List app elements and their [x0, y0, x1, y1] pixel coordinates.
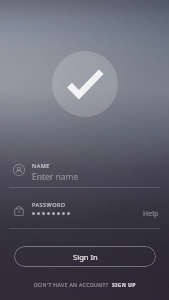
other: Name	[13, 164, 25, 176]
staticText: Help	[143, 209, 159, 219]
staticText: Sign In	[73, 252, 98, 262]
staticText: PASSWORD	[32, 201, 66, 208]
other: Password	[13, 205, 25, 217]
button[interactable]: Name	[0, 152, 169, 188]
button[interactable]: Sign In	[14, 246, 156, 267]
button[interactable]: Help	[143, 209, 159, 219]
staticText: Enter name	[32, 171, 79, 183]
button[interactable]: SIGN UP	[112, 282, 136, 289]
staticText: SIGN UP	[112, 282, 136, 289]
staticText: DON'T HAVE AN ACCOUNT?	[34, 282, 109, 289]
staticText: NAME	[32, 162, 50, 169]
button[interactable]: Password	[0, 193, 169, 229]
